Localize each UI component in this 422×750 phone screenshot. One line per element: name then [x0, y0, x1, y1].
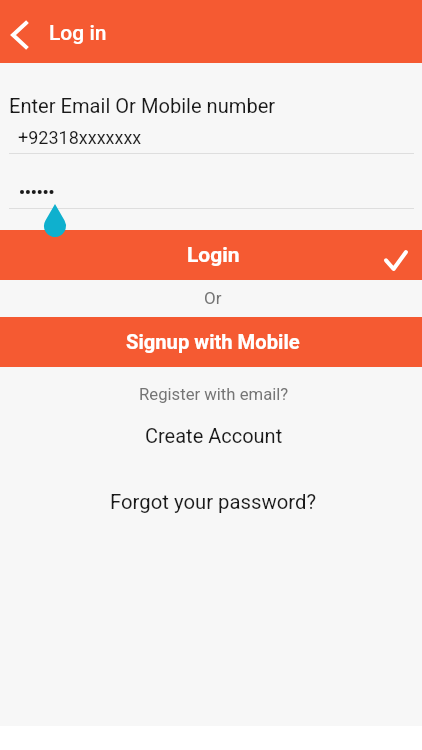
- button[interactable]: Back: [0, 0, 38, 63]
- staticText: +92318xxxxxxx: [18, 127, 142, 148]
- button[interactable]: Password: [9, 175, 414, 209]
- staticText: Forgot your password?: [110, 490, 317, 514]
- staticText: Create Account: [145, 424, 283, 447]
- button[interactable]: Login: [0, 230, 422, 280]
- button[interactable]: +92318xxxxxxx: [9, 120, 414, 154]
- button[interactable]: Signup with Mobile: [0, 317, 422, 367]
- staticText: Enter Email Or Mobile number: [9, 94, 276, 118]
- staticText: Or: [204, 288, 222, 308]
- staticText: Register with email?: [139, 385, 289, 405]
- button[interactable]: Forgot your password?: [0, 490, 422, 514]
- button[interactable]: Create Account: [0, 424, 422, 447]
- staticText: Signup with Mobile: [126, 330, 300, 354]
- staticText: Log in: [49, 21, 107, 46]
- button[interactable]: Register with email?: [0, 385, 422, 405]
- staticText: Login: [187, 243, 240, 268]
